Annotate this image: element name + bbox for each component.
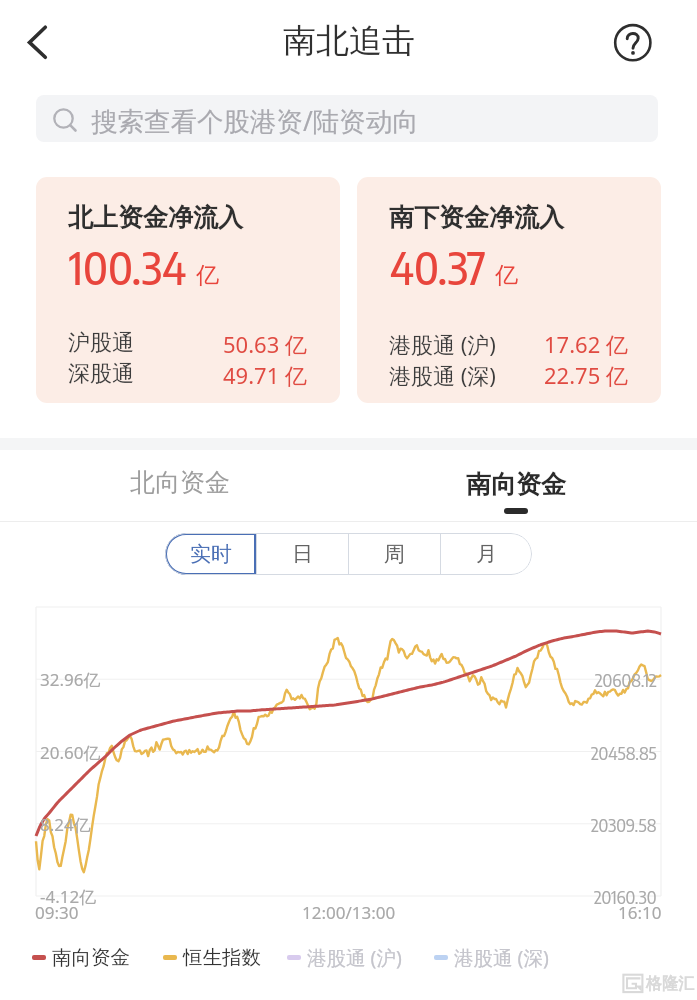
staticText: 亿 xyxy=(196,261,219,290)
staticText: 港股通 (深) xyxy=(389,360,496,390)
staticText: 搜索查看个股港资/陆资动向 xyxy=(91,103,419,139)
staticText: 南北追击 xyxy=(283,20,415,62)
staticText: 港股通 (沪) xyxy=(389,329,496,359)
staticText: 港股通 (深) xyxy=(454,944,549,971)
staticText: -4.12亿 xyxy=(40,885,97,908)
button[interactable]: 北上资金净流入 xyxy=(36,177,340,403)
button[interactable]: Help xyxy=(607,17,659,69)
staticText: 20608.12 xyxy=(595,668,657,690)
staticText: 16:10 xyxy=(618,901,662,924)
staticText: 09:30 xyxy=(35,901,79,924)
staticText: 恒生指数 xyxy=(183,945,261,970)
button[interactable]: 南下资金净流入 xyxy=(357,177,661,403)
staticText: 20309.58 xyxy=(591,813,657,835)
staticText: 32.96亿 xyxy=(40,668,101,691)
staticText: 南向资金 xyxy=(52,945,130,970)
button[interactable]: 港股通 (深) xyxy=(434,941,549,973)
staticText: 沪股通 xyxy=(68,329,134,357)
staticText: 22.75 亿 xyxy=(544,360,628,390)
staticText: 8.24亿 xyxy=(40,813,91,836)
button[interactable]: 月 xyxy=(441,533,532,575)
button[interactable]: 周 xyxy=(349,533,440,575)
staticText: 40.37 xyxy=(390,239,486,295)
button[interactable]: 南向资金 xyxy=(416,450,616,522)
staticText: 周 xyxy=(384,541,405,567)
staticText: 格隆汇 xyxy=(646,974,694,994)
button[interactable]: Back xyxy=(13,17,61,65)
staticText: 南下资金净流入 xyxy=(389,202,564,233)
button[interactable]: 北向资金 xyxy=(80,450,280,522)
staticText: 港股通 (沪) xyxy=(307,944,402,971)
staticText: 20458.85 xyxy=(591,741,657,763)
staticText: 12:00/13:00 xyxy=(302,901,396,924)
staticText: 月 xyxy=(476,541,497,567)
button[interactable]: 南向资金 xyxy=(32,941,130,973)
staticText: 20160.30 xyxy=(594,885,657,907)
staticText: 日 xyxy=(292,541,313,567)
staticText: 深股通 xyxy=(68,360,134,388)
staticText: 北上资金净流入 xyxy=(68,202,243,233)
button[interactable]: 恒生指数 xyxy=(163,941,261,973)
staticText: 17.62 亿 xyxy=(544,329,628,359)
button[interactable]: 港股通 (沪) xyxy=(287,941,402,973)
staticText: 实时 xyxy=(190,541,232,567)
staticText: 50.63 亿 xyxy=(223,329,307,359)
staticText: 亿 xyxy=(495,261,518,290)
button[interactable]: 实时 xyxy=(165,533,256,575)
staticText: 100.34 xyxy=(69,239,187,295)
staticText: 49.71 亿 xyxy=(223,360,307,390)
staticText: 北向资金 xyxy=(130,467,230,498)
staticText: 20.60亿 xyxy=(40,741,101,764)
button[interactable]: 搜索查看个股港资/陆资动向 xyxy=(36,95,658,142)
staticText: 南向资金 xyxy=(466,469,566,500)
button[interactable]: 日 xyxy=(257,533,348,575)
